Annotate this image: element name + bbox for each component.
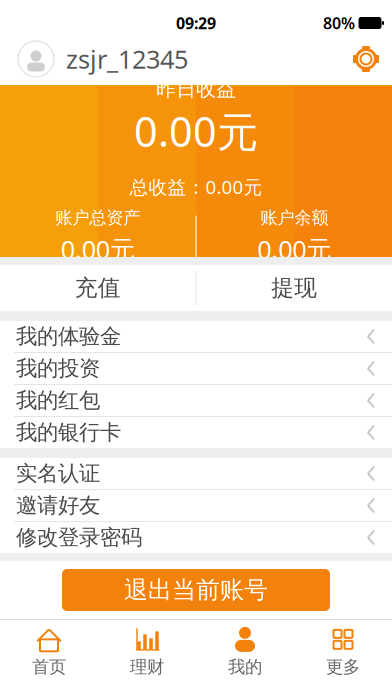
staticText: zsjr_12345 xyxy=(66,42,188,76)
button[interactable]: 我的红包 xyxy=(0,385,392,416)
staticText: 退出当前账号 xyxy=(124,575,268,605)
button[interactable]: 更多 xyxy=(294,620,392,683)
button[interactable]: 我的 xyxy=(196,620,294,683)
button[interactable]: 邀请好友 xyxy=(0,490,392,521)
button[interactable]: 我的体验金 xyxy=(0,321,392,352)
staticText: 首页 xyxy=(32,656,66,678)
staticText: 我的投资 xyxy=(16,355,100,382)
staticText: 充值 xyxy=(75,274,121,302)
staticText: 我的 xyxy=(228,656,262,678)
staticText: 理财 xyxy=(130,656,164,678)
staticText: 09:29 xyxy=(176,12,216,34)
staticText: 账户余额 xyxy=(260,207,328,228)
button[interactable]: 充值 xyxy=(0,265,195,311)
button[interactable]: Settings xyxy=(340,33,392,85)
button[interactable]: 修改登录密码 xyxy=(0,522,392,553)
staticText: 实名认证 xyxy=(16,460,100,487)
button[interactable]: 我的投资 xyxy=(0,353,392,384)
staticText: 账户总资产 xyxy=(55,207,140,228)
staticText: 我的银行卡 xyxy=(16,419,121,446)
staticText: 修改登录密码 xyxy=(16,524,142,551)
staticText: 昨日收益 xyxy=(156,77,236,101)
staticText: 0.00元 xyxy=(61,232,135,266)
staticText: 80% xyxy=(323,12,355,34)
staticText: 提现 xyxy=(271,274,317,302)
staticText: 0.00元 xyxy=(257,232,331,266)
staticText: 更多 xyxy=(326,656,360,678)
button[interactable]: 理财 xyxy=(98,620,196,683)
staticText: 0.00元 xyxy=(134,103,258,158)
staticText: 邀请好友 xyxy=(16,492,100,519)
button[interactable]: 我的银行卡 xyxy=(0,417,392,448)
button[interactable]: 实名认证 xyxy=(0,458,392,489)
staticText: 我的红包 xyxy=(16,387,100,414)
button[interactable]: 退出当前账号 xyxy=(62,569,330,611)
button[interactable]: 首页 xyxy=(0,620,98,683)
staticText: 总收益：0.00元 xyxy=(129,174,262,199)
button[interactable]: 提现 xyxy=(196,265,392,311)
staticText: 我的体验金 xyxy=(16,323,121,350)
